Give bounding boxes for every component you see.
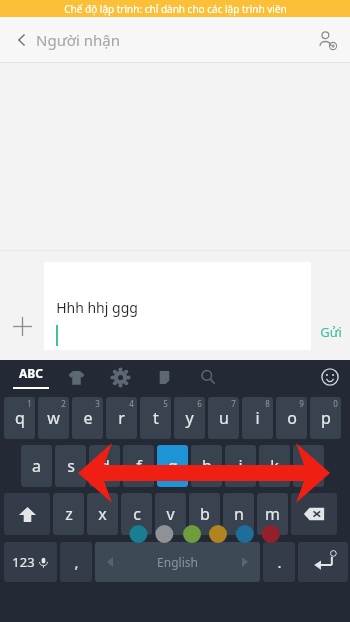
button[interactable]: z	[53, 493, 84, 535]
button[interactable]: Backspace	[291, 493, 337, 535]
button[interactable]: l	[293, 445, 324, 487]
button[interactable]: Add attachment	[0, 304, 44, 348]
button[interactable]: p	[310, 397, 341, 439]
button[interactable]: x	[87, 493, 118, 535]
button[interactable]: j	[225, 445, 256, 487]
button[interactable]: Shift	[4, 493, 50, 535]
button[interactable]: d	[89, 445, 120, 487]
button[interactable]: o	[276, 397, 307, 439]
staticText: e	[83, 407, 93, 429]
staticText: .	[277, 552, 282, 572]
staticText: v	[166, 503, 175, 525]
staticText: u	[219, 407, 229, 429]
staticText: a	[32, 455, 41, 477]
staticText: r	[118, 407, 125, 429]
staticText: i	[255, 407, 260, 429]
staticText: g	[168, 455, 178, 477]
staticText: 9	[299, 398, 304, 409]
staticText: l	[306, 455, 311, 477]
button[interactable]: k	[259, 445, 290, 487]
button[interactable]: m	[257, 493, 288, 535]
staticText: d	[100, 455, 110, 477]
button[interactable]: a	[21, 445, 52, 487]
button[interactable]: e	[72, 397, 103, 439]
button[interactable]: w	[38, 397, 69, 439]
staticText: z	[65, 503, 73, 525]
staticText: 1	[27, 398, 32, 409]
staticText: s	[67, 455, 75, 477]
staticText: y	[185, 407, 194, 429]
staticText: 123	[12, 553, 35, 571]
button[interactable]: Add recipient	[304, 17, 350, 62]
staticText: x	[98, 503, 107, 525]
staticText: Người nhận	[36, 30, 120, 50]
staticText: 4	[129, 398, 134, 409]
button[interactable]: Back	[0, 18, 44, 62]
staticText: w	[47, 407, 60, 429]
button[interactable]: .	[263, 542, 295, 582]
button[interactable]: Stickers	[54, 360, 98, 394]
staticText: ,	[74, 552, 79, 572]
button[interactable]: Hhh hhj ggg	[44, 262, 311, 350]
staticText: 5	[163, 398, 168, 409]
staticText: m	[265, 503, 280, 525]
button[interactable]: Enter	[298, 542, 348, 582]
button[interactable]: i	[242, 397, 273, 439]
staticText: q	[15, 407, 25, 429]
staticText: 3	[95, 398, 100, 409]
button[interactable]: u	[208, 397, 239, 439]
staticText: t	[153, 407, 159, 429]
staticText: Chế độ lập trình: chỉ dành cho các lập t…	[64, 2, 287, 16]
button[interactable]: Search	[186, 360, 230, 394]
button[interactable]: q	[4, 397, 35, 439]
button[interactable]: b	[189, 493, 220, 535]
staticText: j	[238, 455, 243, 477]
staticText: 0	[333, 398, 338, 409]
button[interactable]: v	[155, 493, 186, 535]
button[interactable]: g	[157, 445, 188, 487]
button[interactable]: h	[191, 445, 222, 487]
staticText: k	[270, 455, 279, 477]
button[interactable]: Gửi	[311, 317, 350, 347]
staticText: b	[200, 503, 210, 525]
staticText: 7	[231, 398, 236, 409]
button[interactable]: s	[55, 445, 86, 487]
button[interactable]: y	[174, 397, 205, 439]
button[interactable]: English	[95, 542, 260, 582]
staticText: o	[287, 407, 297, 429]
staticText: English	[157, 554, 198, 570]
button[interactable]: ,	[60, 542, 92, 582]
button[interactable]: ABC	[8, 360, 54, 394]
staticText: c	[133, 503, 141, 525]
button[interactable]: Emoji	[310, 360, 350, 394]
button[interactable]: Settings	[98, 360, 142, 394]
button[interactable]: Clipboard	[142, 360, 186, 394]
staticText: n	[234, 503, 244, 525]
button[interactable]: t	[140, 397, 171, 439]
staticText: ABC	[19, 365, 43, 381]
button[interactable]: c	[121, 493, 152, 535]
button[interactable]: r	[106, 397, 137, 439]
button[interactable]: n	[223, 493, 254, 535]
staticText: h	[202, 455, 212, 477]
staticText: Hhh hhj ggg	[56, 298, 138, 317]
staticText: 8	[265, 398, 270, 409]
button[interactable]: 123	[4, 542, 57, 582]
staticText: Gửi	[320, 323, 342, 341]
button[interactable]: f	[123, 445, 154, 487]
staticText: f	[136, 455, 142, 477]
staticText: p	[321, 407, 331, 429]
staticText: 2	[61, 398, 66, 409]
staticText: 6	[197, 398, 202, 409]
